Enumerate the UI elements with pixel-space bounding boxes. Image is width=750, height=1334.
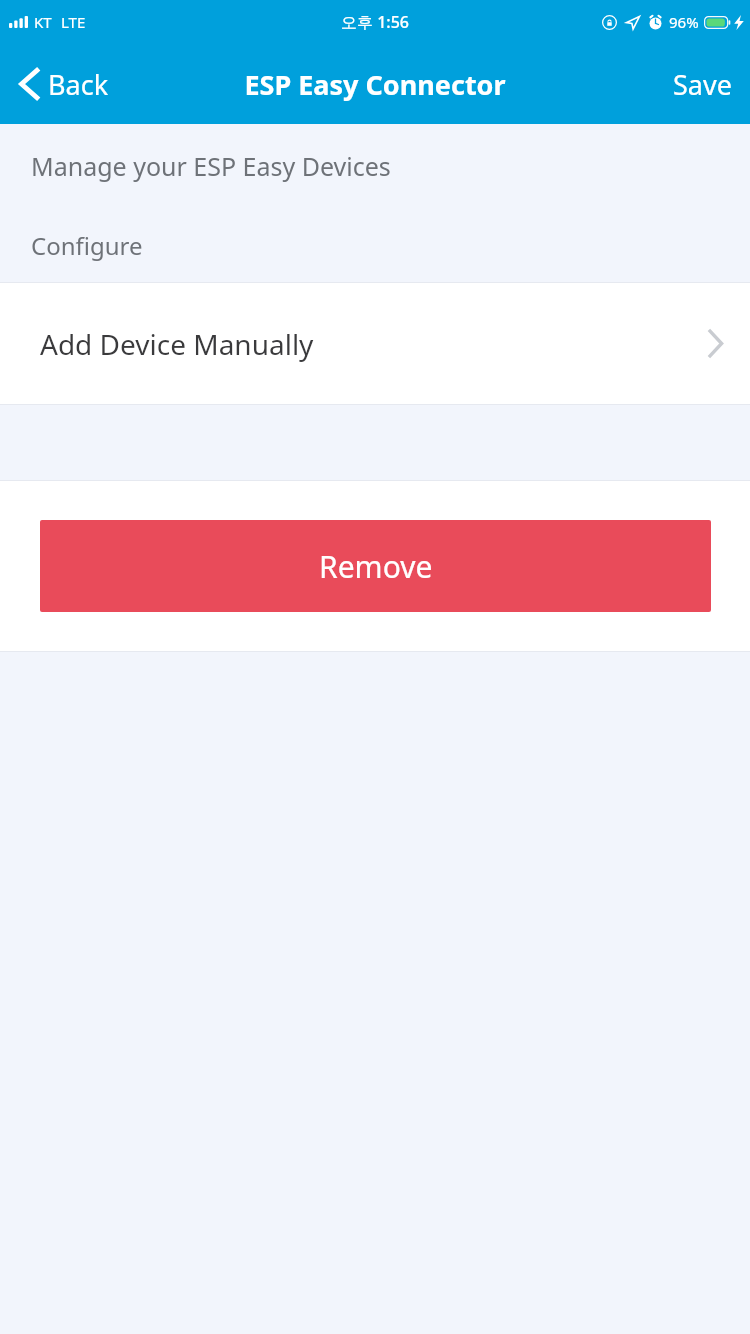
staticText: Add Device Manually (40, 325, 314, 363)
staticText: LTE (61, 12, 86, 32)
staticText: Save (673, 66, 732, 103)
staticText: Remove (319, 546, 433, 587)
button[interactable]: Back (0, 57, 125, 111)
button[interactable]: Remove (40, 520, 711, 612)
staticText: 96% (669, 12, 699, 32)
staticText: 오후 1:56 (341, 11, 409, 33)
staticText: ESP Easy Connector (244, 66, 506, 103)
staticText: Configure (31, 229, 143, 262)
staticText: Manage your ESP Easy Devices (31, 149, 391, 183)
button[interactable]: Save (655, 58, 750, 111)
button[interactable]: Add Device Manually (0, 283, 750, 404)
staticText: KT (34, 12, 52, 32)
staticText: Back (48, 66, 109, 103)
